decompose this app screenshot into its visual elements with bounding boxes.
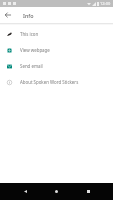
staticText: About Spoken Word Stickers	[20, 79, 79, 85]
button[interactable]: This icon	[0, 26, 113, 42]
staticText: Send email	[20, 63, 43, 69]
button[interactable]: About Spoken Word Stickers	[0, 74, 113, 90]
button[interactable]: Back	[0, 7, 16, 23]
button[interactable]: Send email	[0, 58, 113, 74]
staticText: View webpage	[20, 47, 50, 53]
staticText: 12:00	[100, 1, 111, 6]
staticText: This icon	[20, 31, 39, 37]
button[interactable]: View webpage	[0, 42, 113, 58]
button[interactable]: Recents	[82, 185, 95, 198]
button[interactable]: Home	[50, 185, 63, 198]
staticText: Info	[23, 12, 34, 19]
button[interactable]: Back	[19, 185, 32, 198]
